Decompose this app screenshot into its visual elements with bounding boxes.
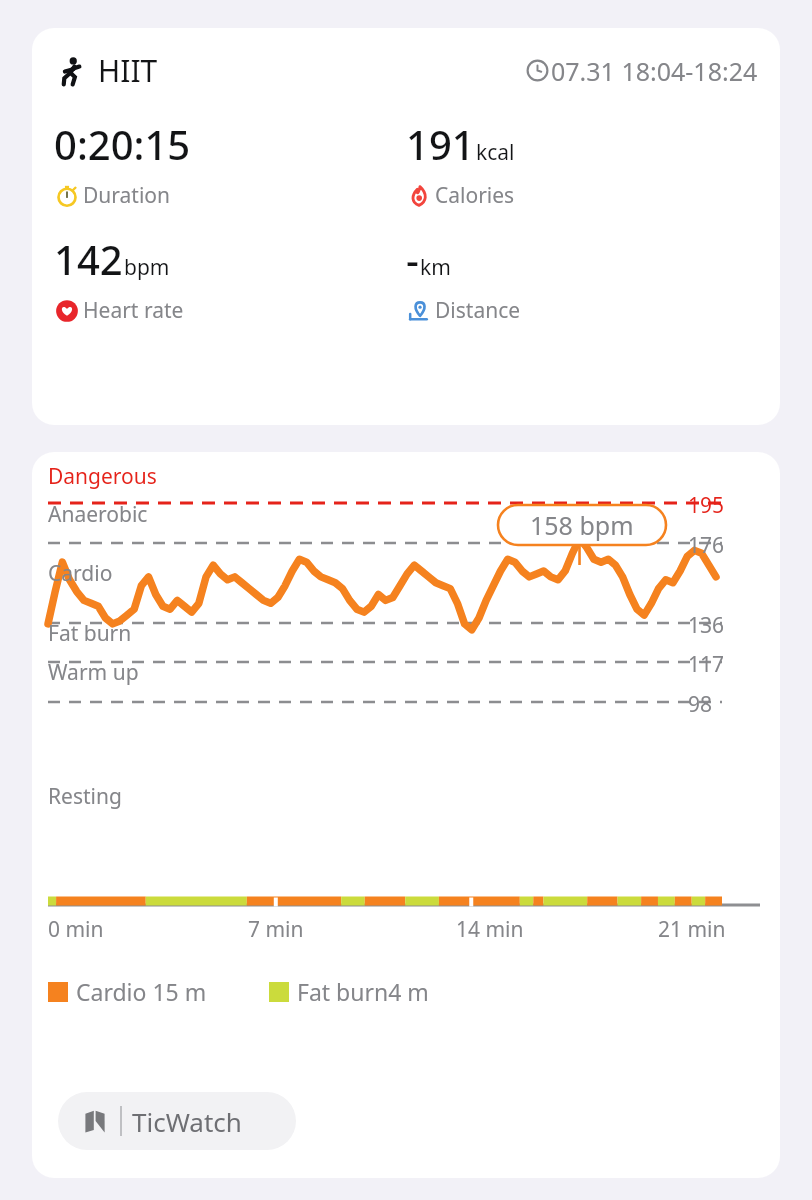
staticText: Calories bbox=[435, 181, 515, 210]
staticText: Warm up bbox=[48, 658, 139, 687]
button[interactable]: HIIT bbox=[32, 28, 780, 425]
staticText: Dangerous bbox=[48, 462, 157, 491]
staticText: Heart rate bbox=[83, 296, 184, 325]
staticText: 117 bbox=[688, 650, 725, 679]
staticText: Resting bbox=[48, 782, 122, 811]
staticText: 142 bbox=[54, 232, 123, 286]
other: TicWatch bbox=[80, 1106, 110, 1136]
button[interactable]: Dangerous bbox=[32, 452, 780, 1178]
staticText: Distance bbox=[435, 296, 521, 325]
staticText: HIIT bbox=[98, 50, 158, 91]
staticText: 7 min bbox=[248, 915, 304, 944]
staticText: 136 bbox=[688, 611, 725, 640]
staticText: 14 min bbox=[456, 915, 524, 944]
staticText: 0 min bbox=[48, 915, 104, 944]
staticText: Fat burn4 m bbox=[297, 976, 429, 1007]
staticText: 21 min bbox=[658, 915, 726, 944]
staticText: km bbox=[420, 253, 451, 282]
staticText: 98 bbox=[688, 690, 713, 719]
staticText: Duration bbox=[83, 181, 171, 210]
staticText: 158 bpm bbox=[530, 508, 634, 542]
staticText: - bbox=[406, 232, 419, 286]
button[interactable]: TicWatch bbox=[58, 1092, 296, 1150]
staticText: Cardio 15 m bbox=[76, 976, 207, 1007]
staticText: TicWatch bbox=[132, 1104, 242, 1139]
staticText: 0:20:15 bbox=[54, 117, 191, 171]
staticText: Cardio bbox=[48, 559, 113, 588]
staticText: Anaerobic bbox=[48, 500, 148, 529]
staticText: bpm bbox=[124, 253, 170, 282]
staticText: 07.31 18:04-18:24 bbox=[551, 54, 758, 88]
staticText: 176 bbox=[688, 531, 725, 560]
staticText: 191 bbox=[406, 117, 475, 171]
staticText: kcal bbox=[476, 138, 515, 167]
staticText: 195 bbox=[688, 491, 725, 520]
staticText: Fat burn bbox=[48, 619, 132, 648]
